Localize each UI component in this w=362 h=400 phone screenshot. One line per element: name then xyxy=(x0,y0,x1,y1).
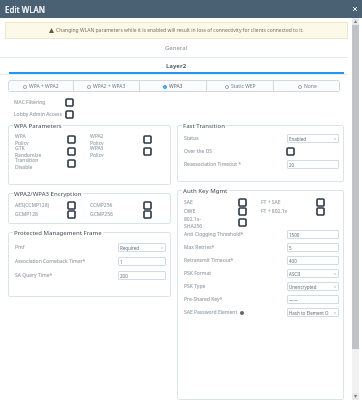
staticText: OWE xyxy=(184,208,196,215)
button[interactable]: ASCII xyxy=(287,269,339,278)
staticText: —— xyxy=(289,297,298,303)
button[interactable]: Checkbox xyxy=(66,99,73,106)
button[interactable]: Checkbox xyxy=(317,199,324,206)
staticText: Status xyxy=(184,135,199,142)
button[interactable]: Checkbox xyxy=(144,148,151,155)
staticText: Pre-Shared Key* xyxy=(184,296,223,303)
button[interactable]: Checkbox xyxy=(239,199,246,206)
staticText: WPA2 + WPA3 xyxy=(93,83,126,90)
button[interactable]: 5 xyxy=(287,243,339,252)
staticText: PSK Format xyxy=(184,270,212,277)
button[interactable]: 1500 xyxy=(287,230,339,239)
button[interactable]: Enabled xyxy=(287,134,339,143)
staticText: GTK Randomize xyxy=(15,145,42,157)
button[interactable]: Scroll up xyxy=(352,18,359,25)
staticText: Auth Key Mgmt xyxy=(183,187,228,195)
button[interactable]: Hash to Element O xyxy=(287,308,339,317)
staticText: 802.1x- SHA256 xyxy=(184,216,203,228)
staticText: Over the DS xyxy=(184,148,213,155)
button[interactable]: Static WEP xyxy=(207,80,273,92)
button[interactable]: Scroll down xyxy=(352,393,359,400)
staticText: Association Comeback Timer* xyxy=(15,258,86,265)
staticText: 1 xyxy=(120,259,123,265)
staticText: Pmf xyxy=(15,244,25,251)
staticText: WPA3 Policy xyxy=(90,145,104,157)
staticText: WPA2 Policy xyxy=(90,133,104,145)
staticText: MAC Filtering xyxy=(14,99,46,106)
button[interactable]: Checkbox xyxy=(239,208,246,215)
staticText: Static WEP xyxy=(231,83,256,90)
staticText: 400 xyxy=(289,258,297,264)
staticText: PSK Type xyxy=(184,283,206,290)
staticText: Changing WLAN parameters while it is ena… xyxy=(56,27,304,34)
button[interactable]: —— xyxy=(287,295,339,304)
staticText: Transition Disable xyxy=(15,157,39,169)
button[interactable]: 400 xyxy=(287,256,339,265)
button[interactable]: Checkbox xyxy=(144,202,151,209)
staticText: Protected Management Frame xyxy=(14,229,102,237)
staticText: Enabled xyxy=(289,136,333,142)
staticText: CCMP256 xyxy=(90,202,113,209)
button[interactable]: WPA2 + WPA3 xyxy=(74,80,139,92)
button[interactable]: Checkbox xyxy=(68,148,75,155)
button[interactable]: Checkbox xyxy=(68,160,75,167)
staticText: None xyxy=(304,83,317,90)
button[interactable]: 1 xyxy=(118,257,166,266)
button[interactable]: Unencrypted xyxy=(287,282,339,291)
button[interactable]: Checkbox xyxy=(144,136,151,143)
staticText: 5 xyxy=(289,245,292,251)
staticText: Anti Clogging Threshold* xyxy=(184,231,244,238)
staticText: SAE Password Element xyxy=(184,309,238,316)
button[interactable]: None xyxy=(274,80,340,92)
staticText: AES(CCMP128) xyxy=(15,202,50,209)
staticText: FT + 802.1x xyxy=(261,208,288,215)
button[interactable]: Checkbox xyxy=(144,211,151,218)
staticText: 200 xyxy=(120,273,128,279)
button[interactable]: Checkbox xyxy=(68,202,75,209)
staticText: WPA + WPA2 xyxy=(29,83,59,90)
staticText: Hash to Element O xyxy=(289,310,333,316)
staticText: WPA3 xyxy=(169,83,183,90)
staticText: SAE xyxy=(184,199,193,206)
button[interactable]: Checkbox xyxy=(66,111,73,118)
staticText: Layer2 xyxy=(166,62,187,70)
staticText: GCMP128 xyxy=(15,211,38,218)
staticText: Unencrypted xyxy=(289,284,333,290)
staticText: Edit WLAN xyxy=(5,4,45,15)
button[interactable]: Checkbox xyxy=(287,148,294,155)
staticText: WPA Parameters xyxy=(14,122,62,130)
staticText: FT + SAE xyxy=(261,199,281,206)
button[interactable]: Checkbox xyxy=(239,219,246,226)
staticText: 1500 xyxy=(289,232,300,238)
button[interactable]: General xyxy=(5,44,348,57)
staticText: SA Query Time* xyxy=(15,272,53,279)
staticText: GCMP256 xyxy=(90,211,113,218)
staticText: General xyxy=(165,44,188,52)
staticText: Retransmit Timeout* xyxy=(184,257,234,264)
staticText: WPA2/WPA3 Encryption xyxy=(14,190,82,198)
staticText: ASCII xyxy=(289,271,333,277)
button[interactable]: Close xyxy=(352,6,358,12)
button[interactable]: Checkbox xyxy=(68,136,75,143)
staticText: 20 xyxy=(289,162,295,168)
button[interactable]: Checkbox xyxy=(68,211,75,218)
staticText: Max Retries* xyxy=(184,244,215,251)
button[interactable]: 200 xyxy=(118,271,166,280)
button[interactable]: Checkbox xyxy=(317,208,324,215)
button[interactable]: 20 xyxy=(287,160,339,169)
staticText: WPA Policy xyxy=(15,133,29,145)
button[interactable]: WPA + WPA2 xyxy=(8,80,73,92)
staticText: Lobby Admin Access xyxy=(14,111,62,118)
button[interactable]: WPA3 xyxy=(140,80,206,92)
button[interactable]: Layer2 xyxy=(5,62,348,74)
staticText: Required xyxy=(120,245,160,251)
staticText: Fast Transition xyxy=(183,122,225,130)
staticText: Reassociation Timeout * xyxy=(184,161,242,168)
button[interactable]: Required xyxy=(118,243,166,252)
